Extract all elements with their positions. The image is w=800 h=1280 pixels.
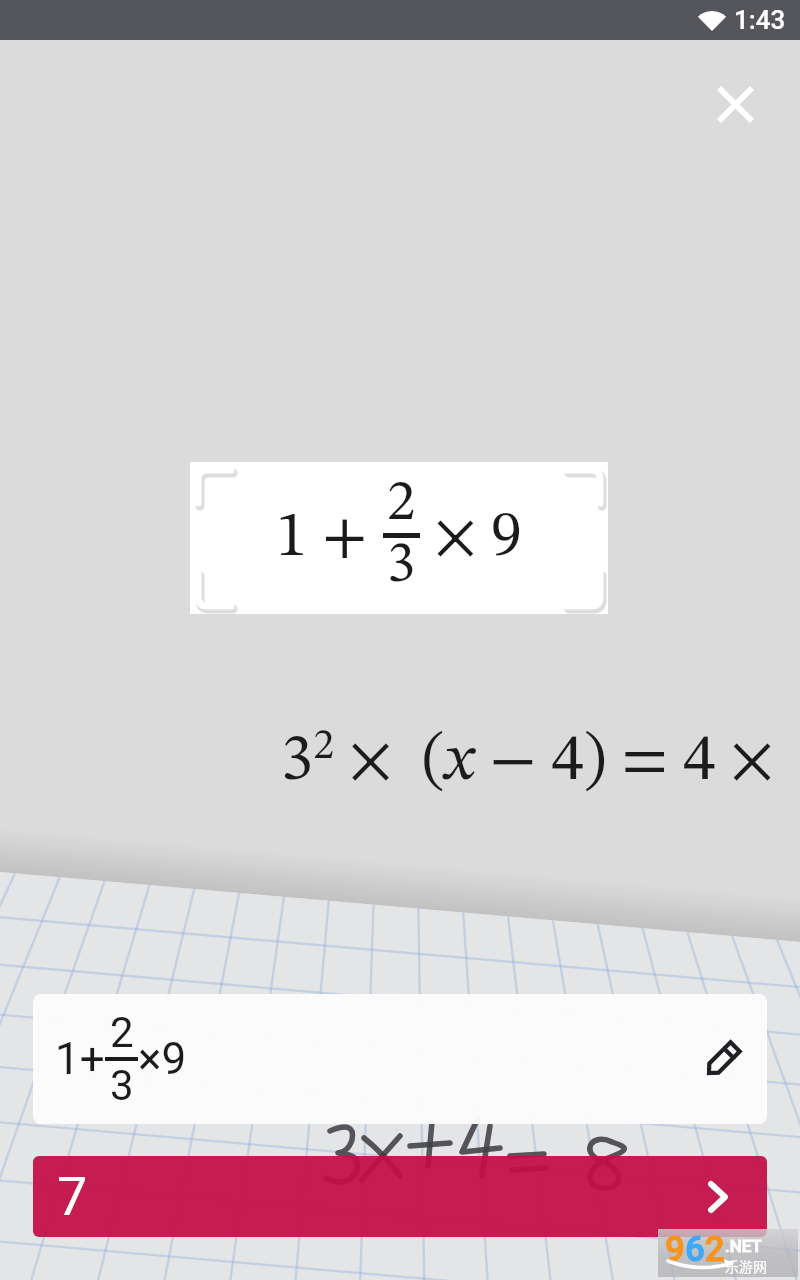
button[interactable] [705,74,765,134]
staticText: 乐游网 [725,1256,767,1276]
staticText: 962 [665,1229,725,1270]
staticText: 1+ [55,1033,105,1085]
staticText: 3 [387,538,416,595]
staticText: ×9 [138,1033,187,1085]
staticText: 3 [110,1061,134,1110]
button[interactable]: 7 [33,1156,767,1237]
staticText: 2 [110,1008,134,1057]
staticText: 1:43 [734,5,786,35]
staticText: 32 × (x − 4) = 4 × [281,726,774,794]
staticText: 2 [387,476,416,533]
staticText: .NET [725,1236,762,1256]
staticText: 7 [57,1165,88,1228]
staticText: 1 + [276,507,383,570]
button[interactable]: 1+ [33,994,767,1124]
staticText: × 9 [420,507,523,570]
